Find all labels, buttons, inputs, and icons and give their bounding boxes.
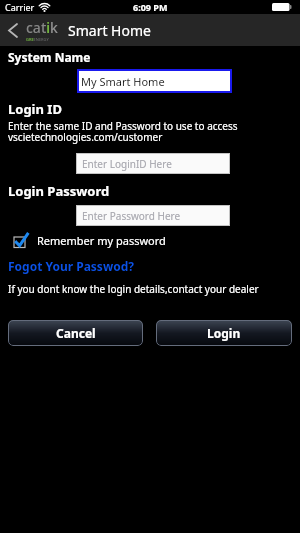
staticText: Enter the same ID and Password to use to… — [8, 119, 238, 144]
staticText: System Name — [8, 49, 91, 65]
button[interactable]: Login — [156, 320, 292, 346]
button[interactable] — [0, 14, 26, 46]
staticText: 6:09 PM — [133, 1, 168, 13]
staticText: Cancel — [56, 325, 96, 341]
staticText: Enter LoginID Here — [82, 157, 172, 171]
button[interactable]: My Smart Home — [77, 69, 232, 93]
staticText: catik — [26, 18, 58, 37]
staticText: Enter Password Here — [82, 209, 181, 223]
button[interactable]: Fogot Your Passwod? — [8, 258, 134, 274]
staticText: My Smart Home — [81, 74, 165, 89]
staticText: GREENERGY — [26, 37, 49, 42]
staticText: If you dont know the login details,conta… — [8, 282, 259, 296]
staticText: Login — [207, 325, 241, 341]
staticText: Login ID — [8, 100, 62, 118]
button[interactable]: Enter LoginID Here — [76, 153, 230, 174]
button[interactable] — [13, 232, 30, 248]
button[interactable]: catik — [26, 18, 58, 42]
staticText: Remember my password — [37, 233, 166, 248]
button[interactable]: Remember my password — [8, 232, 166, 248]
button[interactable]: Enter Password Here — [76, 205, 230, 226]
staticText: Smart Home — [68, 21, 151, 40]
staticText: Carrier — [5, 1, 35, 13]
button[interactable]: Cancel — [8, 320, 143, 346]
staticText: Login Password — [8, 182, 110, 200]
